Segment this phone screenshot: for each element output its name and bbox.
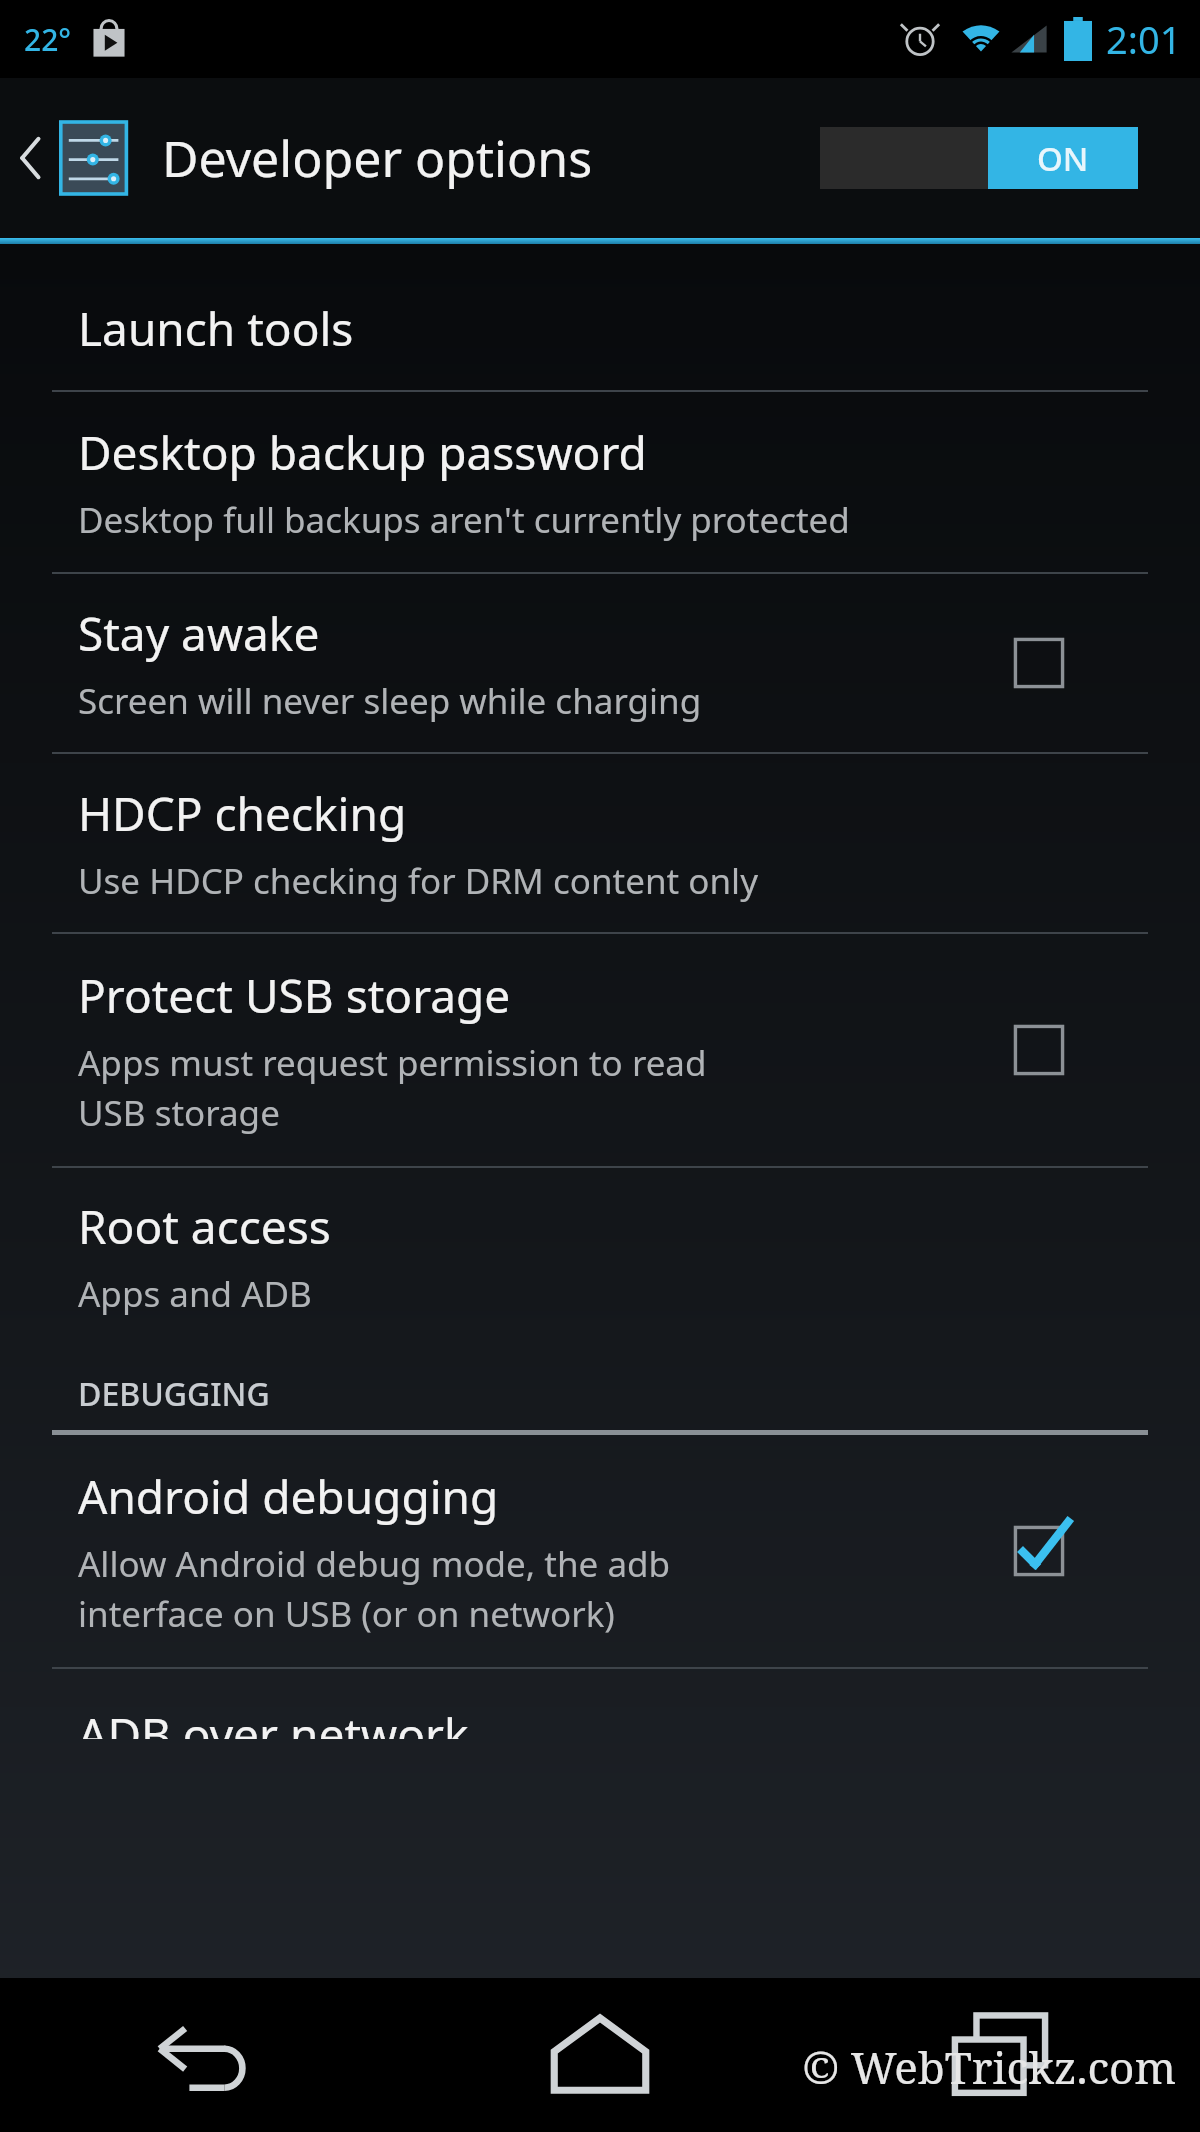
- staticText: Desktop full backups aren't currently pr…: [78, 496, 850, 544]
- staticText: 2:01: [1106, 13, 1182, 65]
- button[interactable]: ADB over network: [0, 1669, 1200, 1739]
- staticText: Android debugging: [78, 1465, 499, 1528]
- button[interactable]: Developer options: [0, 108, 611, 208]
- button[interactable]: Developer options on/off switch: [820, 127, 1138, 189]
- button[interactable]: Desktop backup password: [0, 392, 1200, 572]
- staticText: Screen will never sleep while charging: [78, 677, 702, 725]
- button[interactable]: Android debugging: [0, 1435, 1200, 1667]
- staticText: Apps and ADB: [78, 1270, 312, 1318]
- staticText: HDCP checking: [78, 782, 407, 845]
- staticText: Protect USB storage: [78, 964, 511, 1027]
- staticText: Stay awake: [78, 602, 320, 665]
- staticText: ON: [1037, 136, 1089, 181]
- staticText: Apps must request permission to read USB…: [78, 1039, 707, 1136]
- staticText: DEBUGGING: [78, 1372, 270, 1416]
- staticText: Allow Android debug mode, the adb interf…: [78, 1540, 671, 1637]
- button[interactable]: Home: [400, 1978, 800, 2132]
- staticText: Desktop backup password: [78, 421, 647, 484]
- button[interactable]: Back: [0, 1978, 400, 2132]
- staticText: © WebTrickz.com: [802, 2037, 1176, 2097]
- button[interactable]: HDCP checking: [0, 754, 1200, 932]
- staticText: Root access: [78, 1195, 331, 1258]
- staticText: Use HDCP checking for DRM content only: [78, 857, 758, 905]
- staticText: Launch tools: [78, 297, 354, 360]
- button[interactable]: Recent apps: [800, 1978, 1200, 2132]
- staticText: Developer options: [162, 124, 593, 192]
- staticText: ADB over network: [78, 1703, 469, 1739]
- button[interactable]: Root access: [0, 1168, 1200, 1344]
- button[interactable]: Launch tools: [0, 266, 1200, 390]
- staticText: 22°: [24, 19, 72, 60]
- button[interactable]: Protect USB storage: [0, 934, 1200, 1166]
- button[interactable]: Stay awake: [0, 574, 1200, 752]
